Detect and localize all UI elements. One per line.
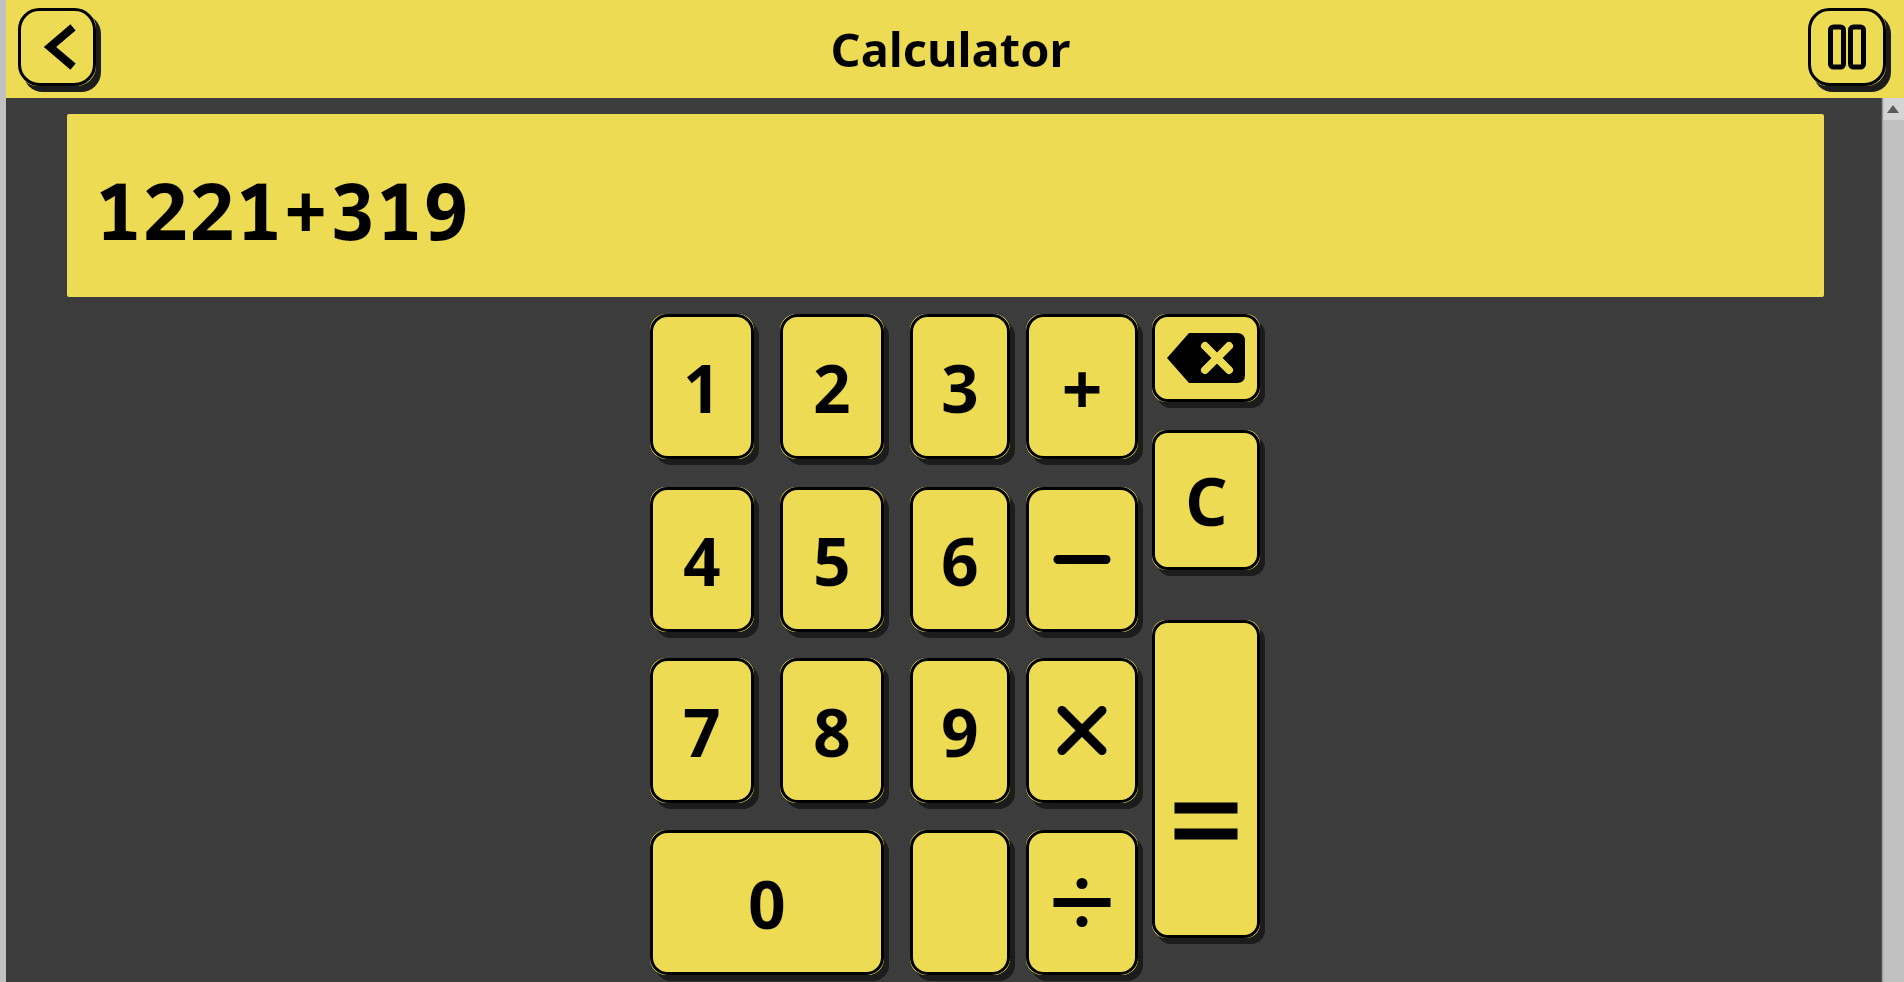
staticText: 2 bbox=[813, 342, 851, 432]
staticText: + bbox=[1061, 338, 1103, 436]
button[interactable]: Scrollbar bbox=[1882, 98, 1904, 982]
button[interactable]: 0 bbox=[650, 830, 884, 975]
staticText: 3 bbox=[941, 342, 979, 432]
button[interactable]: 1221+319 bbox=[67, 114, 1824, 297]
staticText: C bbox=[1185, 455, 1228, 545]
button[interactable]: 7 bbox=[650, 658, 754, 803]
button[interactable]: 5 bbox=[780, 487, 884, 632]
staticText: 9 bbox=[941, 686, 979, 776]
button[interactable]: 1 bbox=[650, 314, 754, 459]
button[interactable]: + bbox=[1026, 314, 1138, 459]
button[interactable]: 6 bbox=[910, 487, 1010, 632]
staticText: 8 bbox=[813, 686, 851, 776]
button[interactable]: Equals bbox=[1152, 620, 1260, 938]
button[interactable]: Minus bbox=[1026, 487, 1138, 632]
button[interactable]: Backspace bbox=[1152, 314, 1260, 402]
staticText: Calculator bbox=[830, 17, 1071, 81]
button[interactable]: Pause bbox=[1808, 8, 1886, 86]
button[interactable]: C bbox=[1152, 430, 1260, 570]
staticText: 1221+319 bbox=[95, 157, 470, 263]
staticText: 4 bbox=[683, 515, 721, 605]
staticText: 0 bbox=[748, 858, 786, 948]
staticText: 5 bbox=[813, 515, 851, 605]
button[interactable]: 3 bbox=[910, 314, 1010, 459]
button[interactable]: 4 bbox=[650, 487, 754, 632]
button[interactable]: Divide bbox=[1026, 830, 1138, 975]
staticText: 7 bbox=[683, 686, 721, 776]
button[interactable]: 2 bbox=[780, 314, 884, 459]
staticText: 6 bbox=[941, 515, 979, 605]
button[interactable]: 8 bbox=[780, 658, 884, 803]
staticText: 1 bbox=[683, 342, 721, 432]
button[interactable]: 9 bbox=[910, 658, 1010, 803]
button[interactable] bbox=[910, 830, 1010, 975]
button[interactable]: Back bbox=[18, 8, 96, 86]
button[interactable]: Multiply bbox=[1026, 658, 1138, 803]
